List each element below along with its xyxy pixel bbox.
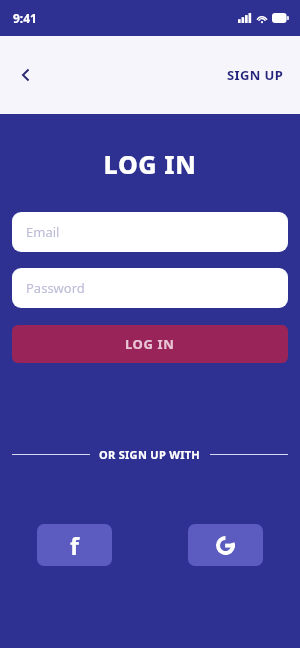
staticText: OR SIGN UP WITH [99,447,201,462]
button[interactable]: Sign up with Google [188,524,263,566]
button[interactable]: Password [12,268,288,308]
button[interactable]: Email [12,212,288,252]
button[interactable]: SIGN UP [221,58,290,92]
button[interactable]: Sign up with Facebook [37,524,112,566]
staticText: 9:41 [13,10,37,26]
staticText: LOG IN [12,147,288,181]
staticText: f [70,530,79,561]
button[interactable]: Back [6,55,46,95]
staticText: Password [26,279,85,297]
staticText: Email [26,223,60,241]
staticText: SIGN UP [227,66,284,84]
button[interactable]: LOG IN [12,325,288,363]
staticText: LOG IN [125,335,175,353]
